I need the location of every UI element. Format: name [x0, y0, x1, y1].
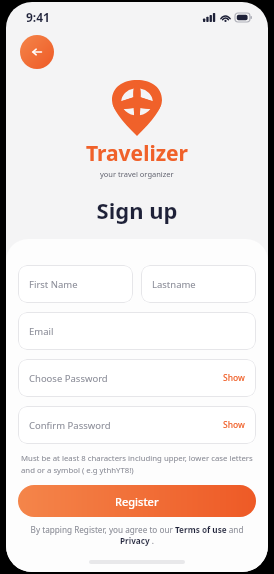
staticText: Register — [115, 494, 159, 509]
button[interactable]: Register — [18, 485, 256, 517]
staticText: Travelizer — [86, 139, 188, 168]
staticText: Choose Password — [29, 372, 108, 385]
staticText: First Name — [29, 278, 78, 291]
staticText: your travel organizer — [100, 169, 174, 179]
staticText: Email — [29, 325, 54, 338]
button[interactable]: Lastname — [141, 265, 256, 303]
button[interactable]: First Name — [18, 265, 133, 303]
staticText: Must be at least 8 characters including … — [21, 453, 253, 475]
staticText: 9:41 — [26, 9, 50, 25]
button[interactable]: Back — [20, 35, 54, 69]
staticText: Lastname — [152, 278, 196, 291]
staticText: Confirm Password — [29, 419, 111, 432]
staticText: Show — [223, 372, 245, 384]
button[interactable]: Choose Password — [18, 359, 256, 397]
button[interactable]: Email — [18, 312, 256, 350]
button[interactable]: By tapping Register, you agree to our Te… — [24, 524, 250, 547]
staticText: Sign up — [6, 195, 268, 225]
staticText: Show — [223, 419, 245, 431]
button[interactable]: Confirm Password — [18, 406, 256, 444]
